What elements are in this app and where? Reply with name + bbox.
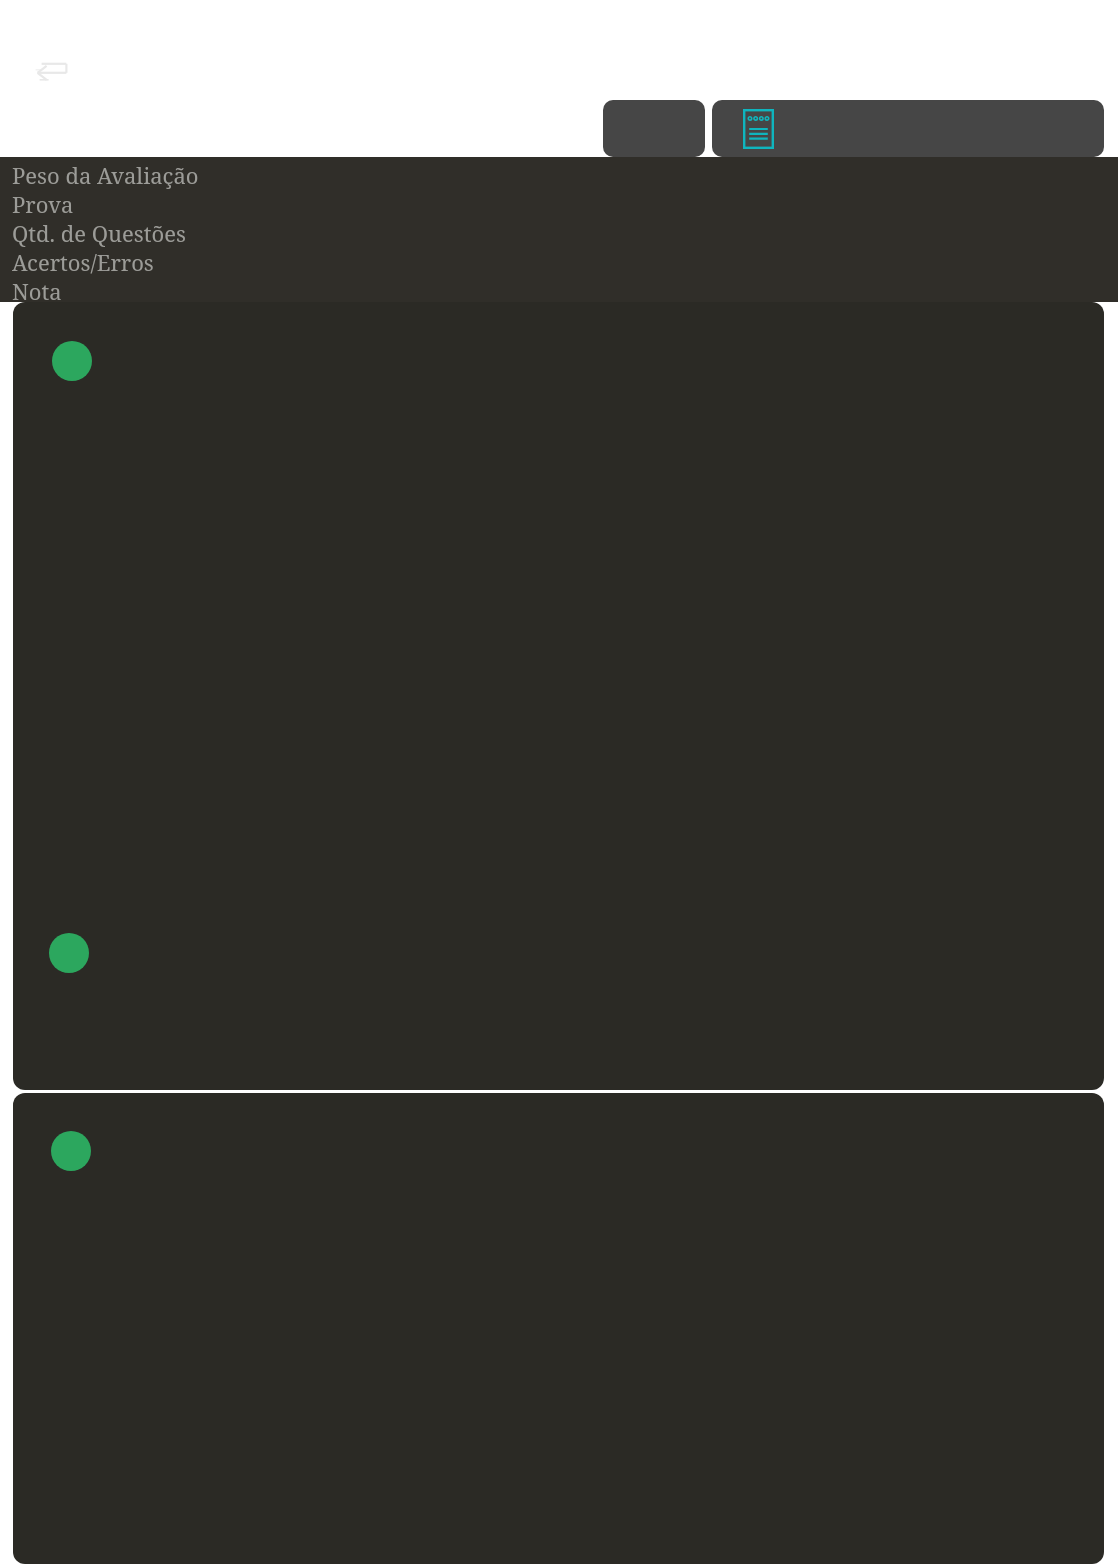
button[interactable]: Nota [12,276,62,302]
button[interactable]: Back [28,52,76,92]
staticText: Qtd. de Questões [12,218,186,247]
staticText: Acertos/Erros [12,247,154,276]
button[interactable]: Notes [712,100,1104,157]
button[interactable]: Options [603,100,705,157]
button[interactable]: Acertos/Erros [12,247,154,276]
staticText: Nota [12,276,62,302]
button[interactable]: Peso da Avaliação [12,160,199,189]
staticText: Peso da Avaliação [12,160,199,189]
button[interactable]: Qtd. de Questões [12,218,186,247]
staticText: Prova [12,189,74,218]
button[interactable] [13,1093,1104,1564]
button[interactable]: Prova [12,189,74,218]
button[interactable] [13,302,1104,1090]
